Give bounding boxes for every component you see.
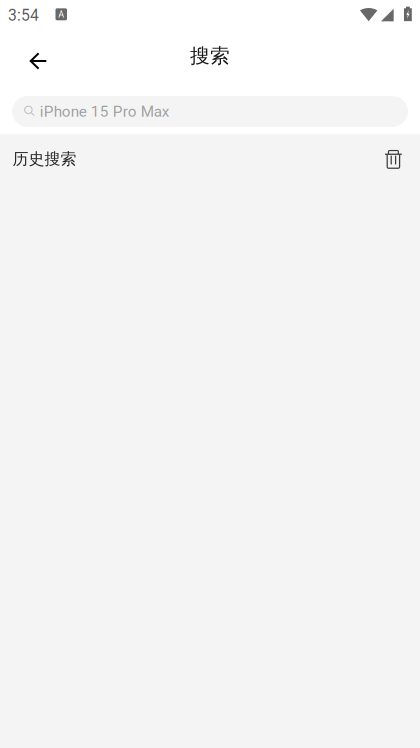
- button[interactable]: Clear search history: [375, 141, 411, 177]
- staticText: 历史搜索: [13, 149, 77, 169]
- staticText: iPhone 15 Pro Max: [40, 102, 170, 120]
- staticText: 搜索: [190, 44, 230, 68]
- button[interactable]: iPhone 15 Pro Max: [12, 96, 408, 127]
- staticText: A: [58, 9, 64, 19]
- staticText: 3:54: [8, 6, 39, 25]
- button[interactable]: Back: [14, 37, 62, 85]
